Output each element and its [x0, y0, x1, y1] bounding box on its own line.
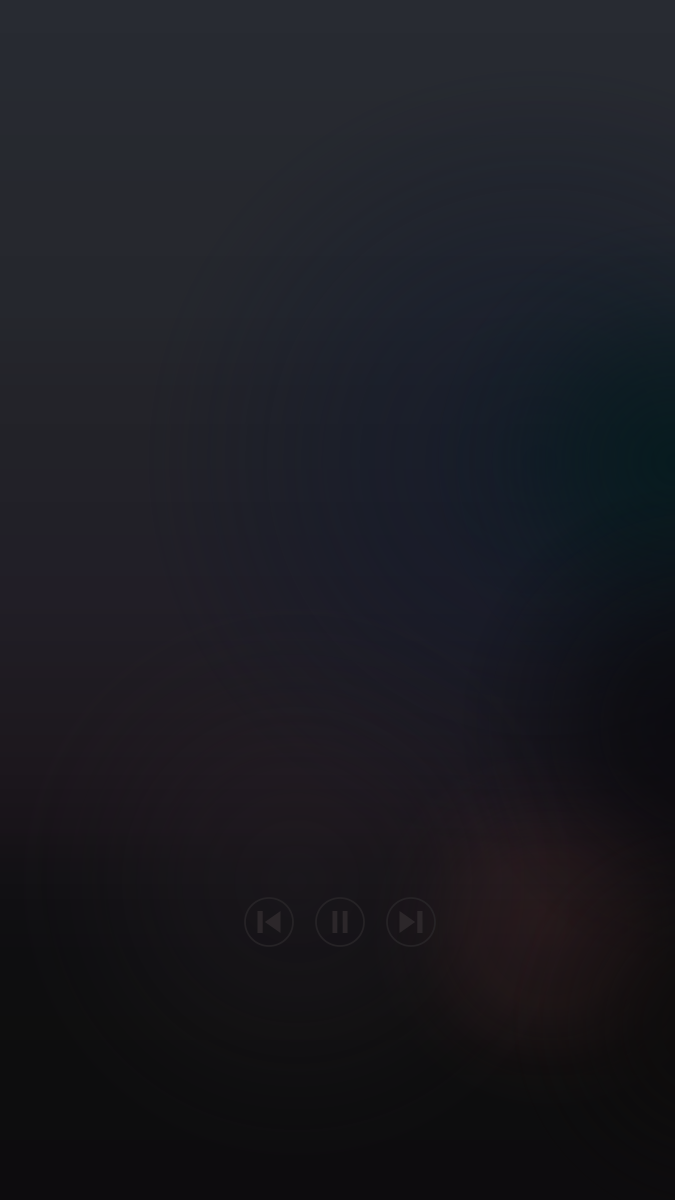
button[interactable]: Pause [308, 890, 372, 954]
button[interactable]: Next track [379, 890, 443, 954]
button[interactable]: Previous track [237, 890, 301, 954]
